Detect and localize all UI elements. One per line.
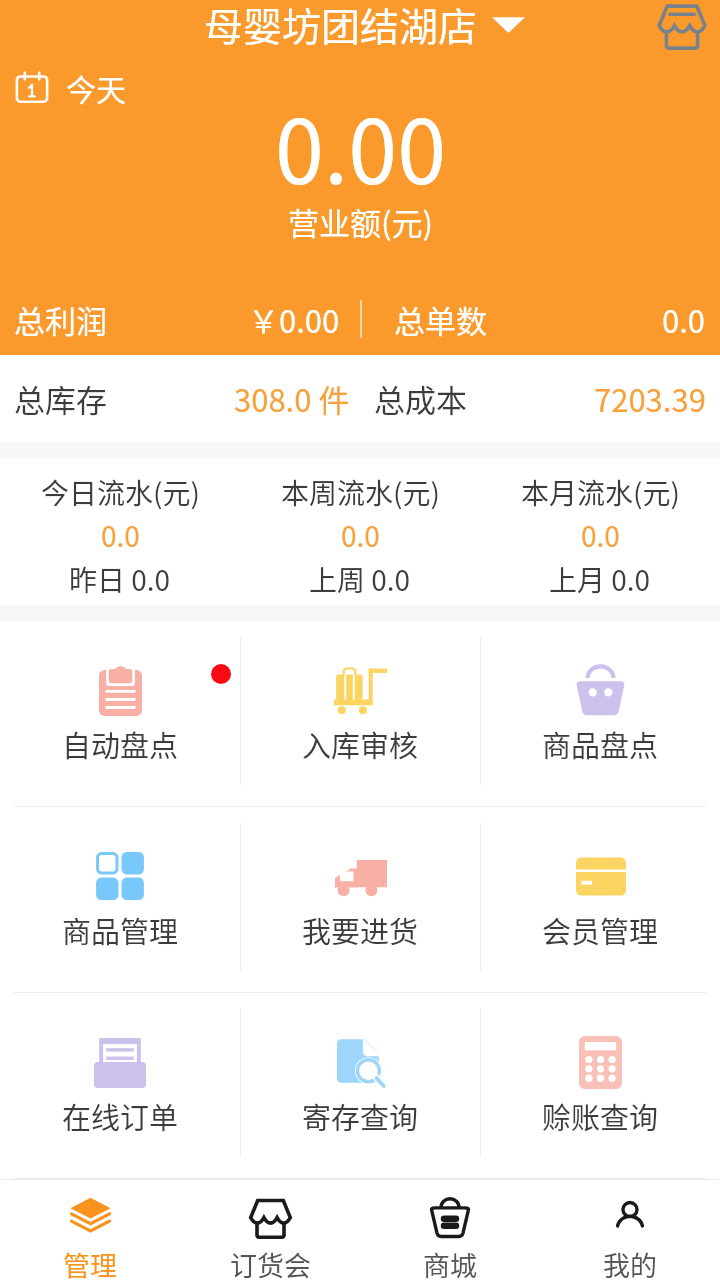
staticText: 0.00 <box>275 82 446 209</box>
staticText: 商品管理 <box>62 909 179 951</box>
button[interactable]: 自动盘点 <box>0 621 240 806</box>
staticText: 商城 <box>423 1245 477 1280</box>
staticText: 0.0 <box>341 515 380 556</box>
button[interactable]: 本月流水(元) <box>480 472 720 600</box>
button[interactable]: 入库审核 <box>241 621 480 806</box>
button[interactable]: 今天 <box>14 66 126 109</box>
button[interactable]: 商城 <box>360 1180 540 1280</box>
staticText: ￥0.00 <box>248 297 340 342</box>
button[interactable]: 寄存查询 <box>241 993 480 1178</box>
staticText: 总单数 <box>394 297 487 342</box>
staticText: 昨日 0.0 <box>69 559 171 600</box>
staticText: 会员管理 <box>542 909 659 951</box>
staticText: 管理 <box>63 1245 117 1280</box>
staticText: 上周 0.0 <box>309 559 411 600</box>
staticText: 母婴坊团结湖店 <box>204 0 478 52</box>
button[interactable]: 本周流水(元) <box>240 472 480 600</box>
button[interactable]: 商品盘点 <box>481 621 720 806</box>
staticText: 订货会 <box>230 1245 311 1280</box>
button[interactable]: 母婴坊团结湖店 <box>204 0 525 52</box>
staticText: 营业额(元) <box>288 199 433 244</box>
staticText: 自动盘点 <box>62 723 179 765</box>
staticText: 总利润 <box>14 297 107 342</box>
staticText: 0.0 <box>662 297 706 342</box>
button[interactable]: 今日流水(元) <box>0 472 240 600</box>
staticText: 308.0 件 <box>234 376 350 421</box>
button[interactable]: 在线订单 <box>0 993 240 1178</box>
staticText: 0.0 <box>101 515 140 556</box>
button[interactable]: Store <box>652 0 712 52</box>
button[interactable]: 商品管理 <box>0 807 240 992</box>
staticText: 上月 0.0 <box>549 559 651 600</box>
staticText: 总库存 <box>14 376 107 421</box>
staticText: 0.0 <box>581 515 620 556</box>
staticText: 商品盘点 <box>542 723 659 765</box>
staticText: 在线订单 <box>62 1095 179 1137</box>
staticText: 总成本 <box>374 376 467 421</box>
staticText: 7203.39 <box>594 376 706 421</box>
staticText: 今天 <box>66 66 126 109</box>
staticText: 今日流水(元) <box>41 472 200 513</box>
button[interactable]: 我要进货 <box>241 807 480 992</box>
staticText: 我的 <box>603 1245 657 1280</box>
staticText: 寄存查询 <box>302 1095 419 1137</box>
button[interactable]: 赊账查询 <box>481 993 720 1178</box>
button[interactable]: 订货会 <box>180 1180 360 1280</box>
button[interactable]: 管理 <box>0 1180 180 1280</box>
button[interactable]: 我的 <box>540 1180 720 1280</box>
staticText: 赊账查询 <box>542 1095 659 1137</box>
button[interactable]: 总库存 <box>0 355 720 442</box>
staticText: 本周流水(元) <box>281 472 440 513</box>
staticText: 本月流水(元) <box>521 472 680 513</box>
staticText: 入库审核 <box>302 723 419 765</box>
staticText: 我要进货 <box>302 909 419 951</box>
button[interactable]: 会员管理 <box>481 807 720 992</box>
